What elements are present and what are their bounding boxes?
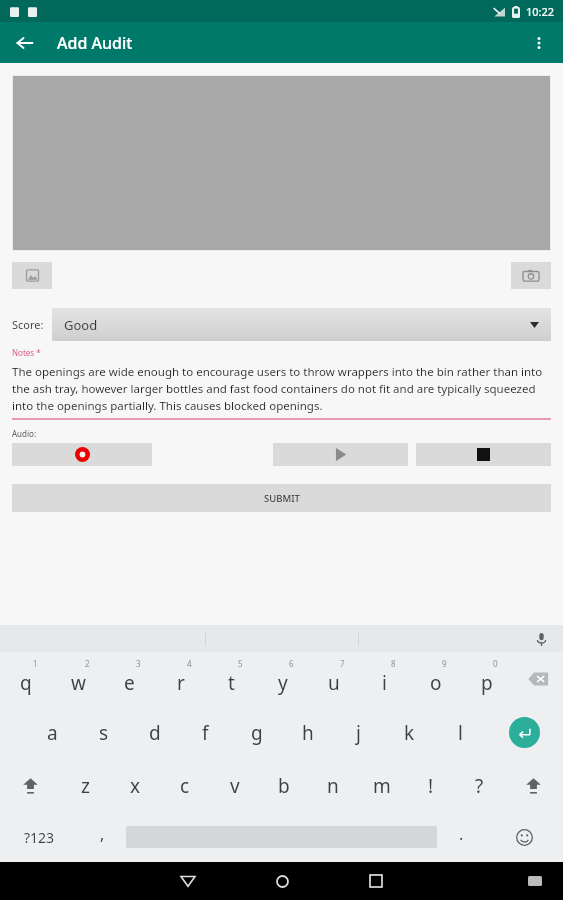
- staticText: Score:: [12, 317, 44, 332]
- staticText: i: [382, 670, 387, 696]
- button[interactable]: Record: [12, 443, 152, 466]
- button[interactable]: 1: [0, 652, 52, 706]
- staticText: v: [230, 773, 240, 799]
- staticText: m: [373, 773, 391, 799]
- button[interactable]: More options: [521, 25, 557, 61]
- button[interactable]: m: [357, 759, 406, 812]
- staticText: Audio:: [12, 428, 37, 439]
- button[interactable]: Emoji: [485, 812, 563, 862]
- button[interactable]: l: [435, 706, 486, 759]
- button[interactable]: Take photo: [511, 262, 551, 289]
- staticText: !: [428, 773, 434, 799]
- button[interactable]: !: [406, 759, 455, 812]
- button[interactable]: The openings are wide enough to encourag…: [12, 364, 551, 414]
- staticText: Good: [64, 316, 98, 334]
- button[interactable]: Back: [8, 26, 42, 60]
- button[interactable]: Backspace: [512, 652, 563, 706]
- staticText: q: [20, 670, 32, 696]
- staticText: g: [251, 720, 263, 746]
- staticText: n: [327, 773, 339, 799]
- button[interactable]: g: [231, 706, 282, 759]
- button[interactable]: j: [333, 706, 384, 759]
- button[interactable]: Shift: [504, 759, 563, 812]
- staticText: r: [177, 670, 185, 696]
- button[interactable]: 0: [461, 652, 512, 706]
- staticText: b: [278, 773, 290, 799]
- staticText: 1: [33, 658, 38, 669]
- button[interactable]: a: [27, 706, 78, 759]
- staticText: p: [481, 670, 493, 696]
- button[interactable]: b: [259, 759, 308, 812]
- button[interactable]: v: [210, 759, 259, 812]
- button[interactable]: c: [160, 759, 210, 812]
- button[interactable]: Play: [273, 443, 408, 466]
- button[interactable]: ?: [455, 759, 504, 812]
- button[interactable]: Back: [160, 862, 216, 900]
- button[interactable]: f: [180, 706, 231, 759]
- staticText: s: [99, 720, 109, 746]
- staticText: 5: [238, 658, 243, 669]
- button[interactable]: n: [308, 759, 357, 812]
- staticText: ?: [475, 773, 484, 799]
- staticText: 9: [442, 658, 447, 669]
- button[interactable]: s: [78, 706, 129, 759]
- staticText: u: [328, 670, 340, 696]
- staticText: w: [71, 670, 86, 696]
- staticText: Notes *: [12, 347, 41, 358]
- button[interactable]: h: [282, 706, 333, 759]
- button[interactable]: Good: [52, 308, 551, 341]
- button[interactable]: 2: [52, 652, 104, 706]
- staticText: z: [81, 773, 90, 799]
- staticText: 2: [85, 658, 90, 669]
- staticText: SUBMIT: [264, 492, 300, 505]
- staticText: x: [130, 773, 141, 799]
- staticText: f: [202, 720, 209, 746]
- staticText: o: [430, 670, 442, 696]
- button[interactable]: Hide keyboard: [521, 867, 549, 895]
- staticText: 7: [340, 658, 345, 669]
- button[interactable]: ?123: [0, 812, 78, 862]
- staticText: l: [458, 720, 463, 746]
- button[interactable]: Shift: [0, 759, 60, 812]
- button[interactable]: 4: [155, 652, 206, 706]
- staticText: e: [124, 670, 135, 696]
- button[interactable]: SUBMIT: [12, 484, 551, 512]
- button[interactable]: Stop: [416, 443, 551, 466]
- staticText: Add Audit: [57, 32, 133, 54]
- staticText: 8: [391, 658, 396, 669]
- staticText: ,: [100, 823, 105, 845]
- staticText: 3: [136, 658, 141, 669]
- button[interactable]: x: [110, 759, 160, 812]
- staticText: d: [149, 720, 161, 746]
- staticText: 10:22: [526, 4, 555, 19]
- button[interactable]: 7: [308, 652, 359, 706]
- staticText: a: [47, 720, 58, 746]
- staticText: 4: [187, 658, 192, 669]
- button[interactable]: 3: [104, 652, 155, 706]
- button[interactable]: d: [129, 706, 180, 759]
- button[interactable]: z: [60, 759, 110, 812]
- staticText: 6: [289, 658, 294, 669]
- staticText: .: [459, 823, 464, 845]
- staticText: t: [228, 670, 235, 696]
- button[interactable]: Home: [254, 862, 310, 900]
- staticText: y: [278, 670, 288, 696]
- button[interactable]: 9: [410, 652, 461, 706]
- staticText: 0: [493, 658, 498, 669]
- staticText: c: [180, 773, 190, 799]
- button[interactable]: Recent apps: [348, 862, 404, 900]
- button[interactable]: Choose from gallery: [12, 262, 52, 289]
- button[interactable]: Enter: [486, 706, 563, 759]
- button[interactable]: .: [437, 812, 485, 862]
- button[interactable]: 6: [257, 652, 308, 706]
- button[interactable]: ,: [78, 812, 126, 862]
- staticText: ?123: [24, 828, 55, 847]
- button[interactable]: k: [384, 706, 435, 759]
- button[interactable]: Voice input: [529, 627, 553, 651]
- button[interactable]: 5: [206, 652, 257, 706]
- button[interactable]: 8: [359, 652, 410, 706]
- staticText: h: [302, 720, 314, 746]
- staticText: j: [356, 720, 361, 746]
